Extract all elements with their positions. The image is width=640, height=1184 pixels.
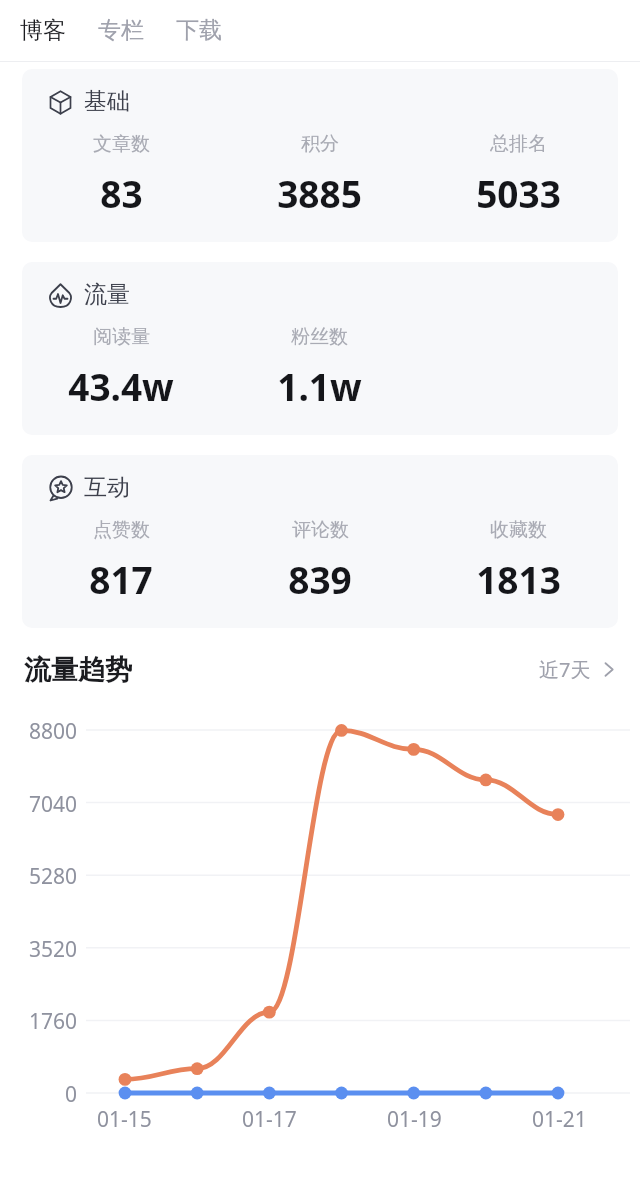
staticText: 下载 xyxy=(176,16,222,45)
staticText: 互动 xyxy=(84,473,130,502)
staticText: 01-15 xyxy=(97,1105,152,1134)
staticText: 1813 xyxy=(476,554,561,604)
staticText: 流量 xyxy=(84,280,130,309)
staticText: 阅读量 xyxy=(93,325,150,349)
button[interactable]: 基础 xyxy=(22,69,618,242)
staticText: 评论数 xyxy=(292,518,349,542)
staticText: 粉丝数 xyxy=(291,325,348,349)
button[interactable]: 博客 xyxy=(12,8,74,53)
staticText: 5033 xyxy=(476,168,561,218)
staticText: 1760 xyxy=(29,1007,78,1033)
staticText: 专栏 xyxy=(98,16,144,45)
staticText: 总排名 xyxy=(490,132,547,156)
staticText: 83 xyxy=(100,168,143,218)
staticText: 基础 xyxy=(84,87,130,116)
staticText: 文章数 xyxy=(93,132,150,156)
staticText: 3885 xyxy=(277,168,362,218)
staticText: 8800 xyxy=(29,717,78,743)
staticText: 01-21 xyxy=(532,1105,587,1134)
staticText: 01-19 xyxy=(387,1105,442,1134)
staticText: 近7天 xyxy=(539,656,591,683)
staticText: 积分 xyxy=(301,132,339,156)
button[interactable]: 专栏 xyxy=(90,8,152,53)
button[interactable]: 流量趋势 xyxy=(24,653,132,687)
button[interactable]: 流量 xyxy=(22,262,618,435)
staticText: 1.1w xyxy=(277,361,362,411)
staticText: 5280 xyxy=(29,862,78,888)
staticText: 817 xyxy=(89,554,153,604)
other: More xyxy=(601,662,616,677)
staticText: 3520 xyxy=(29,935,78,961)
staticText: 博客 xyxy=(20,16,66,45)
button[interactable]: 下载 xyxy=(168,8,230,53)
button[interactable]: 互动 xyxy=(22,455,618,628)
staticText: 收藏数 xyxy=(490,518,547,542)
staticText: 43.4w xyxy=(68,361,174,411)
staticText: 839 xyxy=(288,554,352,604)
button[interactable]: 近7天 xyxy=(535,650,620,689)
staticText: 点赞数 xyxy=(93,518,150,542)
staticText: 0 xyxy=(65,1080,78,1106)
staticText: 7040 xyxy=(29,790,78,816)
staticText: 01-17 xyxy=(242,1105,297,1134)
